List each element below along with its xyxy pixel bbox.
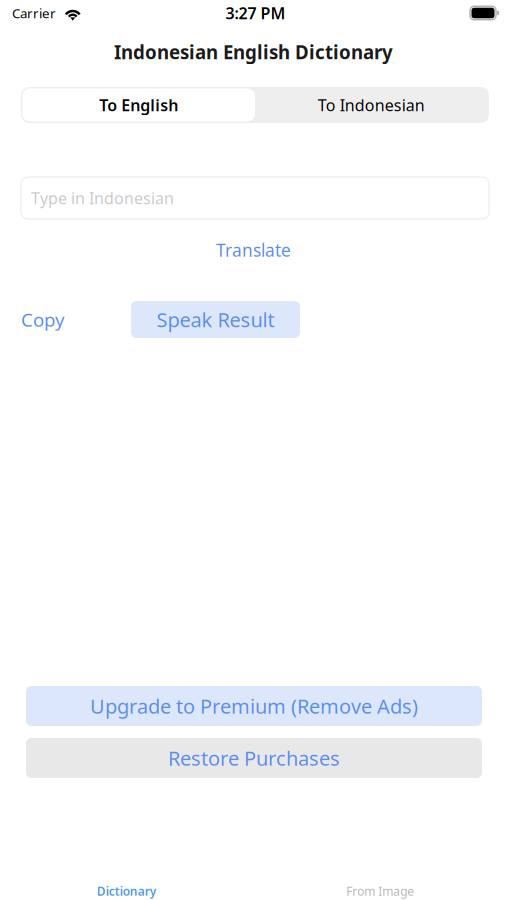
staticText: To English <box>99 94 178 116</box>
button[interactable]: To Indonesian <box>255 88 487 121</box>
button[interactable]: Restore Purchases <box>26 738 482 778</box>
staticText: To Indonesian <box>318 94 425 116</box>
button[interactable]: Translate <box>216 239 291 261</box>
staticText: Type in Indonesian <box>31 187 174 209</box>
button[interactable]: Dictionary <box>0 870 253 900</box>
staticText: From Image <box>346 883 414 899</box>
staticText: Upgrade to Premium (Remove Ads) <box>90 693 418 719</box>
button[interactable]: To English <box>22 88 255 121</box>
staticText: 3:27 PM <box>225 2 285 24</box>
staticText: Restore Purchases <box>168 745 340 771</box>
button[interactable]: Upgrade to Premium (Remove Ads) <box>26 686 482 726</box>
staticText: Copy <box>21 307 65 332</box>
staticText: Speak Result <box>156 306 274 333</box>
button[interactable]: Speak Result <box>131 301 300 338</box>
staticText: Translate <box>216 238 291 261</box>
button[interactable]: Copy <box>21 308 65 330</box>
button[interactable]: From Image <box>253 870 507 900</box>
staticText: Indonesian English Dictionary <box>114 40 393 64</box>
staticText: Dictionary <box>97 883 157 899</box>
staticText: Carrier <box>12 4 56 22</box>
